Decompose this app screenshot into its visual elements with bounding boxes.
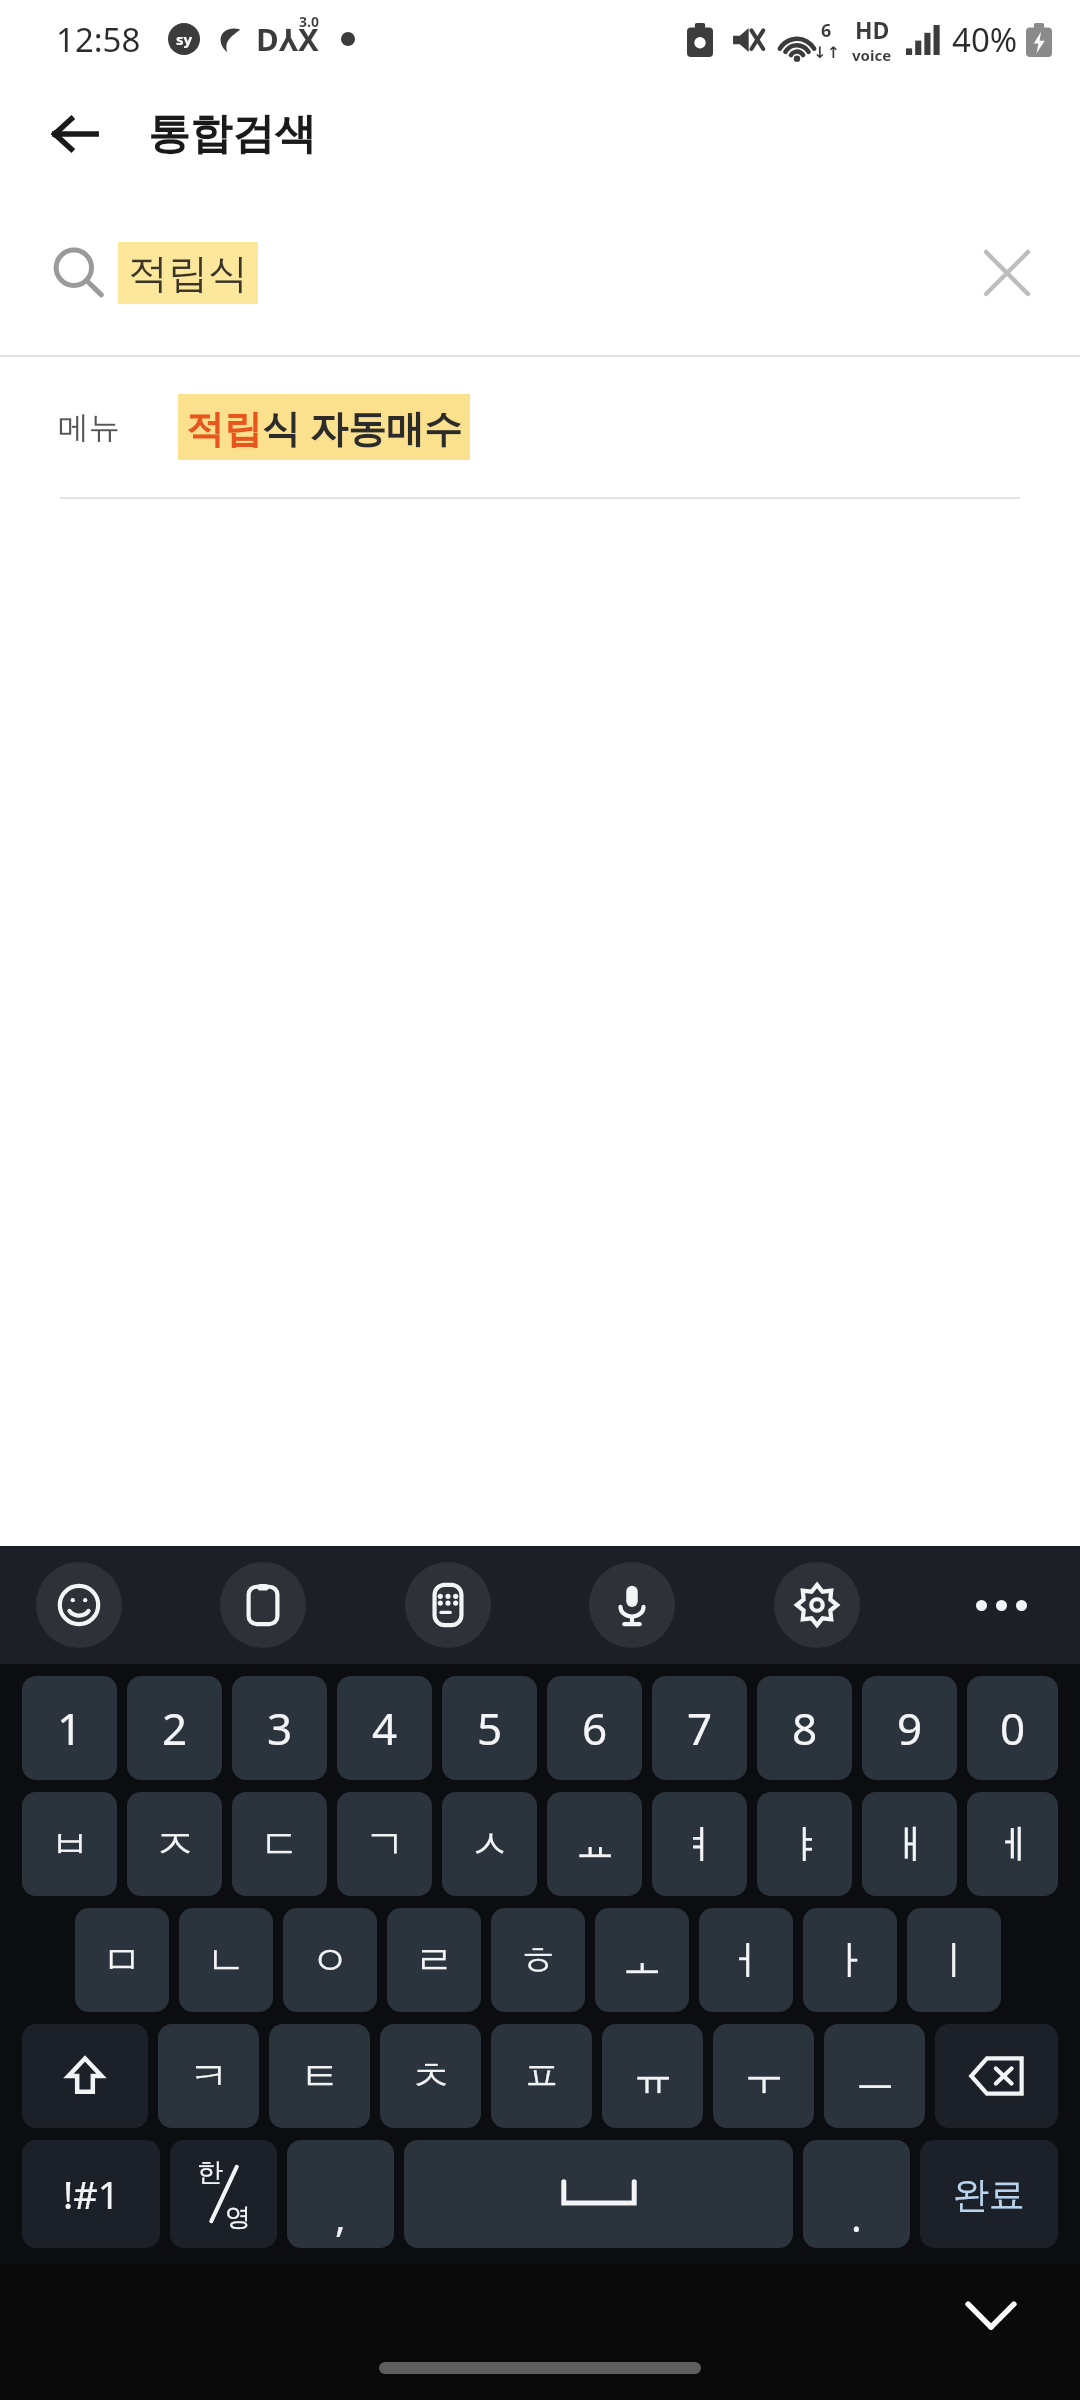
staticText: 4 bbox=[372, 1698, 398, 1758]
staticText: 5 bbox=[477, 1698, 503, 1758]
button[interactable]: . bbox=[803, 2140, 910, 2248]
staticText: 적립식 자동매수 bbox=[186, 401, 462, 453]
button[interactable]: ㅑ bbox=[757, 1792, 852, 1896]
button[interactable]: ㅇ bbox=[283, 1908, 377, 2012]
button[interactable]: 8 bbox=[757, 1676, 852, 1780]
staticText: ㅏ bbox=[830, 1935, 870, 1985]
button[interactable]: ㅍ bbox=[491, 2024, 592, 2128]
staticText: 40% bbox=[952, 17, 1018, 62]
button[interactable]: 완료 bbox=[920, 2140, 1058, 2248]
staticText: ㄷ bbox=[260, 1819, 300, 1869]
staticText: voice bbox=[852, 45, 892, 65]
staticText: HD bbox=[855, 14, 890, 45]
staticText: ㄹ bbox=[414, 1935, 454, 1985]
staticText: , bbox=[335, 2189, 346, 2243]
staticText: . bbox=[851, 2189, 862, 2243]
staticText: ㅑ bbox=[785, 1819, 825, 1869]
staticText: 7 bbox=[687, 1698, 713, 1758]
button[interactable]: !#1 bbox=[22, 2140, 160, 2248]
button[interactable]: ㅐ bbox=[862, 1792, 957, 1896]
staticText: 8 bbox=[792, 1698, 818, 1758]
staticText: ㅗ bbox=[622, 1935, 662, 1985]
staticText: 한 bbox=[197, 2156, 223, 2189]
button[interactable]: ㅊ bbox=[380, 2024, 481, 2128]
staticText: ㅠ bbox=[633, 2051, 673, 2101]
button[interactable]: ㅏ bbox=[803, 1908, 897, 2012]
button[interactable]: ㄴ bbox=[179, 1908, 273, 2012]
staticText: 1 bbox=[57, 1698, 83, 1758]
button[interactable]: ㅛ bbox=[547, 1792, 642, 1896]
button[interactable]: ㄹ bbox=[387, 1908, 481, 2012]
staticText: ㅜ bbox=[744, 2051, 784, 2101]
button[interactable]: hanyeong bbox=[170, 2140, 277, 2248]
button[interactable]: kbmode bbox=[405, 1562, 491, 1648]
button[interactable]: , bbox=[287, 2140, 394, 2248]
button[interactable]: 7 bbox=[652, 1676, 747, 1780]
button[interactable]: ㅈ bbox=[127, 1792, 222, 1896]
button[interactable]: 1 bbox=[22, 1676, 117, 1780]
button[interactable]: ㅡ bbox=[824, 2024, 925, 2128]
button[interactable]: 2 bbox=[127, 1676, 222, 1780]
staticText: ㄴ bbox=[206, 1935, 246, 1985]
staticText: 0 bbox=[1000, 1698, 1026, 1758]
button[interactable]: space bbox=[404, 2140, 793, 2248]
staticText: 영 bbox=[225, 2201, 251, 2234]
button[interactable]: ㄷ bbox=[232, 1792, 327, 1896]
button[interactable]: 9 bbox=[862, 1676, 957, 1780]
staticText: D⅄X bbox=[256, 18, 319, 60]
staticText: ㅋ bbox=[189, 2051, 229, 2101]
staticText: ㅊ bbox=[411, 2051, 451, 2101]
staticText: ㄱ bbox=[365, 1819, 405, 1869]
button[interactable]: ㅗ bbox=[595, 1908, 689, 2012]
staticText: ㅐ bbox=[890, 1819, 930, 1869]
button[interactable]: ㅣ bbox=[907, 1908, 1001, 2012]
staticText: 메뉴 bbox=[58, 408, 120, 447]
button[interactable]: shift bbox=[22, 2024, 148, 2128]
button[interactable]: Hide keyboard bbox=[948, 2272, 1034, 2358]
button[interactable]: 0 bbox=[967, 1676, 1058, 1780]
button[interactable]: gear bbox=[774, 1562, 860, 1648]
button[interactable]: ㅕ bbox=[652, 1792, 747, 1896]
button[interactable]: 3 bbox=[232, 1676, 327, 1780]
button[interactable]: ㅔ bbox=[967, 1792, 1058, 1896]
button[interactable]: Clear search bbox=[964, 230, 1050, 316]
button[interactable]: ㄱ bbox=[337, 1792, 432, 1896]
staticText: ㅎ bbox=[518, 1935, 558, 1985]
button[interactable]: ㅋ bbox=[158, 2024, 259, 2128]
button[interactable]: ㅌ bbox=[269, 2024, 370, 2128]
staticText: ㅛ bbox=[575, 1819, 615, 1869]
staticText: ㅈ bbox=[155, 1819, 195, 1869]
staticText: !#1 bbox=[63, 2168, 120, 2220]
button[interactable]: back bbox=[935, 2024, 1058, 2128]
staticText: 6 bbox=[821, 18, 832, 43]
button[interactable]: Back bbox=[30, 89, 120, 179]
staticText: ㅂ bbox=[50, 1819, 90, 1869]
staticText: sy bbox=[176, 29, 193, 49]
staticText: ㅅ bbox=[470, 1819, 510, 1869]
button[interactable]: ㅎ bbox=[491, 1908, 585, 2012]
button[interactable]: ㅠ bbox=[602, 2024, 703, 2128]
staticText: ㅁ bbox=[102, 1935, 142, 1985]
button[interactable]: 6 bbox=[547, 1676, 642, 1780]
staticText: ㅔ bbox=[993, 1819, 1033, 1869]
staticText: ↓↑ bbox=[813, 43, 840, 62]
button[interactable]: ㅓ bbox=[699, 1908, 793, 2012]
staticText: ㅍ bbox=[522, 2051, 562, 2101]
button[interactable]: 메뉴 bbox=[0, 357, 1080, 497]
button[interactable]: clip bbox=[220, 1562, 306, 1648]
staticText: ㅌ bbox=[300, 2051, 340, 2101]
staticText: 12:58 bbox=[56, 17, 141, 62]
button[interactable]: ㅜ bbox=[713, 2024, 814, 2128]
button[interactable]: 4 bbox=[337, 1676, 432, 1780]
button[interactable]: 5 bbox=[442, 1676, 537, 1780]
staticText: ㅇ bbox=[310, 1935, 350, 1985]
button[interactable]: ㅅ bbox=[442, 1792, 537, 1896]
button[interactable]: ㅂ bbox=[22, 1792, 117, 1896]
button[interactable]: ㅁ bbox=[75, 1908, 169, 2012]
button[interactable]: More options bbox=[958, 1562, 1044, 1648]
button[interactable]: mic bbox=[589, 1562, 675, 1648]
staticText: 3 bbox=[267, 1698, 293, 1758]
button[interactable]: emoji bbox=[36, 1562, 122, 1648]
staticText: 9 bbox=[897, 1698, 923, 1758]
staticText: 완료 bbox=[953, 2172, 1025, 2217]
